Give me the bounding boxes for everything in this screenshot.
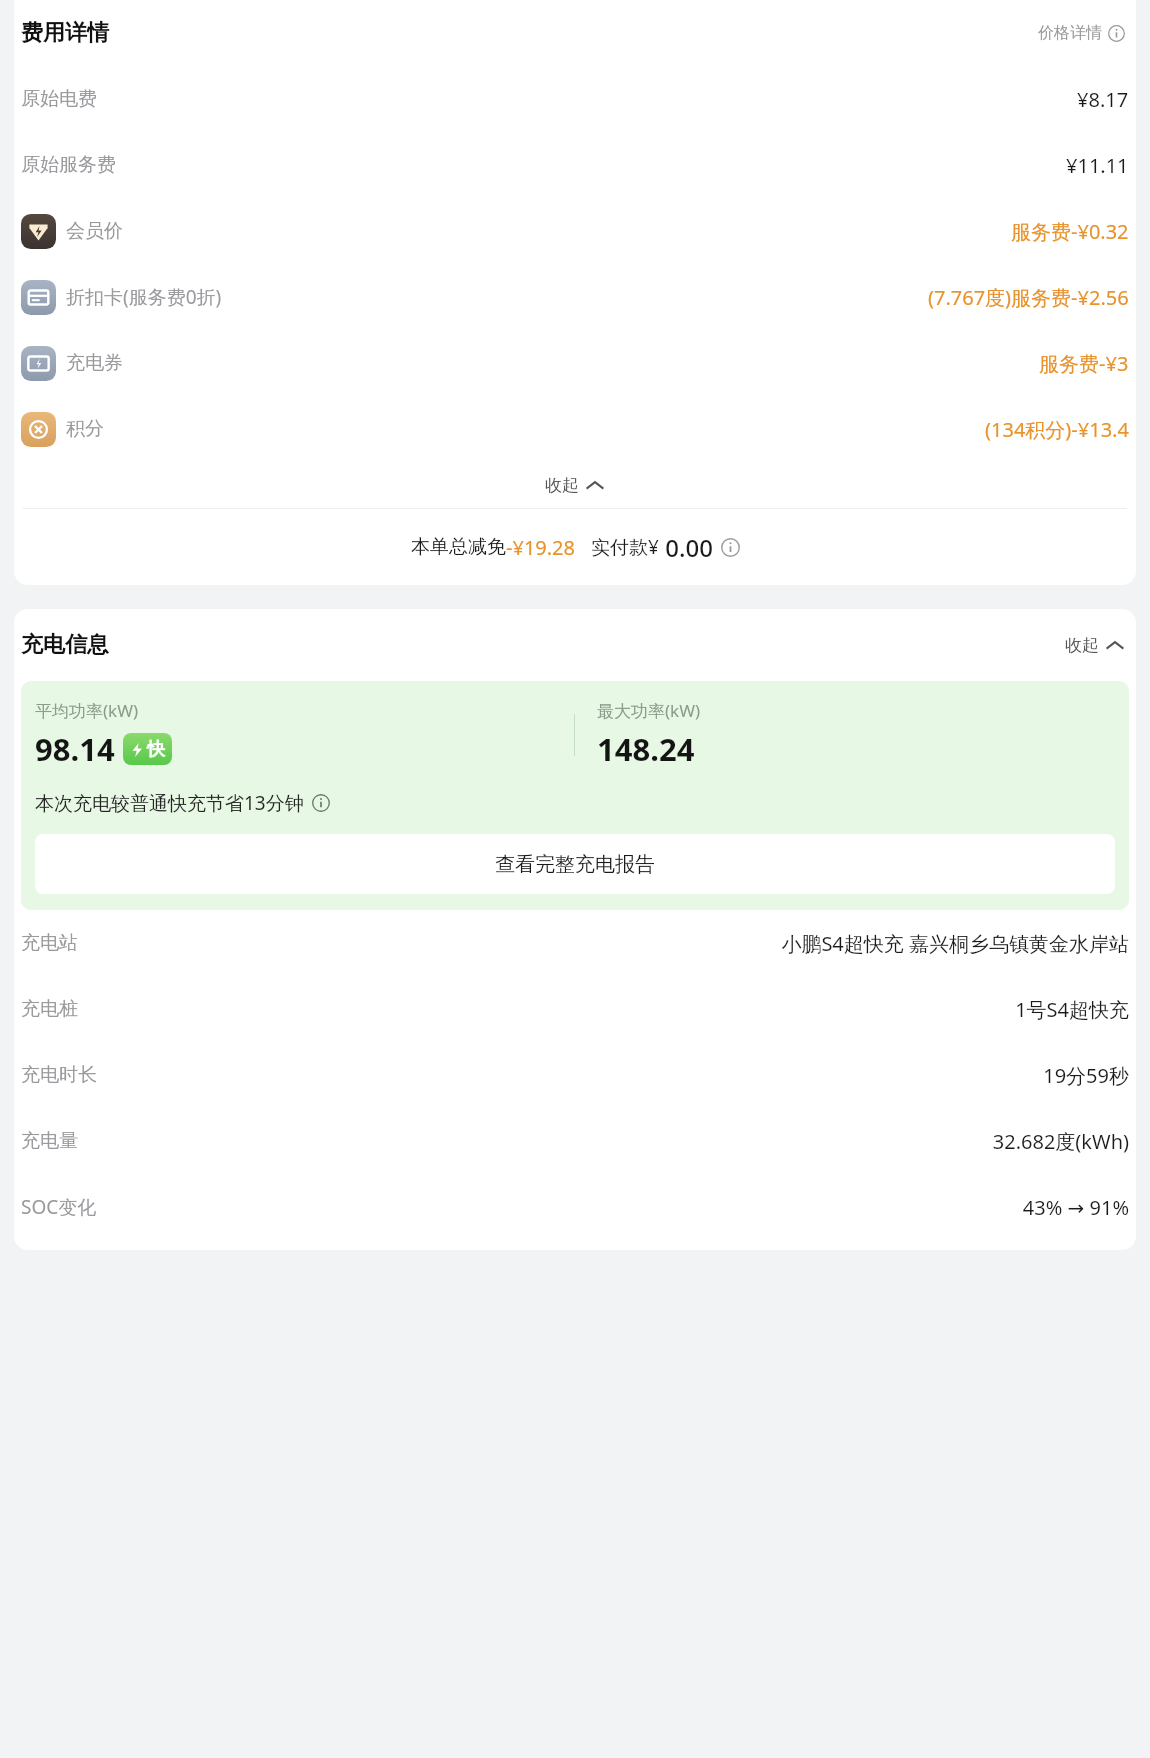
staticText: 会员价 [66,219,123,243]
button[interactable]: 充电券 [21,330,1129,396]
staticText: SOC变化 [21,1194,97,1220]
button[interactable]: 收起 [1061,631,1129,660]
staticText: 0.00 [659,531,713,564]
staticText: 服务费-¥0.32 [1011,218,1129,245]
staticText: 本单总减免 [411,535,506,559]
staticText: 实付款¥ [591,534,659,560]
staticText: 原始服务费 [21,153,116,177]
staticText: 98.14 [35,728,115,770]
staticText: 快 [147,738,165,761]
staticText: 费用详情 [21,19,109,47]
button[interactable]: 充电站 [21,910,1129,976]
staticText: 小鹏S4超快充 嘉兴桐乡乌镇黄金水岸站 [781,930,1129,957]
staticText: 最大功率(kW) [597,699,701,722]
staticText: 19分59秒 [1043,1062,1129,1089]
staticText: (7.767度)服务费-¥2.56 [928,284,1129,311]
staticText: 1号S4超快充 [1015,996,1129,1023]
button[interactable]: 原始服务费 [21,132,1129,198]
staticText: 充电站 [21,931,78,955]
staticText: 折扣卡(服务费0折) [66,284,222,310]
staticText: 查看完整充电报告 [495,852,655,877]
staticText: 平均功率(kW) [35,699,139,722]
staticText: 充电券 [66,351,123,375]
button[interactable]: 折扣卡(服务费0折) [21,264,1129,330]
button[interactable]: 会员价 [21,198,1129,264]
staticText: 积分 [66,417,104,441]
staticText: 服务费-¥3 [1039,350,1129,377]
button[interactable]: 积分 [21,396,1129,462]
staticText: 充电量 [21,1129,78,1153]
staticText: 原始电费 [21,87,97,111]
button[interactable]: 价格详情 [1034,19,1129,47]
button[interactable]: SOC变化 [21,1174,1129,1240]
staticText: -¥19.28 [506,534,575,561]
staticText: 148.24 [597,728,695,770]
staticText: 充电信息 [21,631,109,659]
button[interactable]: 充电时长 [21,1042,1129,1108]
staticText: 价格详情 [1038,23,1102,43]
staticText: 32.682度(kWh) [992,1128,1129,1155]
button[interactable]: 充电桩 [21,976,1129,1042]
staticText: 充电桩 [21,997,78,1021]
button[interactable]: 充电量 [21,1108,1129,1174]
button[interactable]: 查看完整充电报告 [35,834,1115,894]
staticText: 充电时长 [21,1063,97,1087]
staticText: 本次充电较普通快充节省13分钟 [35,790,304,816]
staticText: 收起 [545,475,579,496]
staticText: 43% → 91% [1022,1194,1129,1221]
button[interactable]: 原始电费 [21,66,1129,132]
staticText: (134积分)-¥13.4 [985,416,1129,443]
staticText: ¥8.17 [1077,86,1129,113]
button[interactable]: 收起 [21,462,1129,508]
staticText: ¥11.11 [1066,152,1129,179]
staticText: 收起 [1065,635,1099,656]
